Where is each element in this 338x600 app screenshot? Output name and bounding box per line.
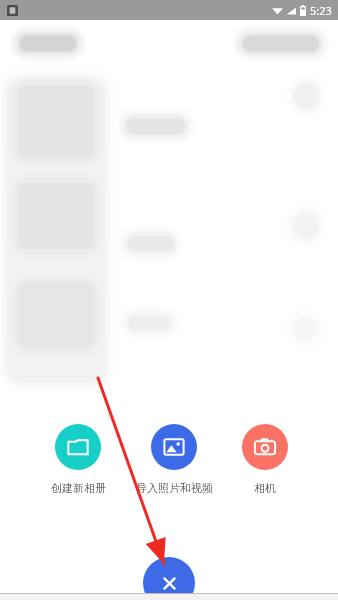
staticText: 5:23	[310, 3, 332, 18]
staticText: 导入照片和视频	[136, 481, 213, 495]
staticText: 相机	[254, 481, 276, 495]
button[interactable]: Camera	[222, 424, 308, 495]
button[interactable]: Import photos and videos	[126, 424, 222, 495]
button[interactable]: Create new album	[30, 424, 126, 495]
button[interactable]: Close	[143, 557, 195, 600]
staticText: 创建新相册	[51, 481, 106, 495]
